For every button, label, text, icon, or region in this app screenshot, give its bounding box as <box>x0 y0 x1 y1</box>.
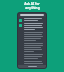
button[interactable]: Ask AI for <box>0 2 64 10</box>
other: Assistant avatar <box>19 24 22 27</box>
button[interactable]: Assistant avatar <box>18 13 46 68</box>
button[interactable] <box>19 43 44 52</box>
staticText: anything <box>25 6 40 10</box>
other: Home <box>28 66 37 67</box>
button[interactable] <box>19 61 44 65</box>
other: Assistant avatar <box>19 19 22 22</box>
button[interactable]: Assistant avatar <box>19 18 44 21</box>
button[interactable]: Assistant avatar <box>19 23 44 30</box>
button[interactable] <box>19 54 44 59</box>
button[interactable] <box>19 32 44 41</box>
staticText: Ask AI for <box>24 2 40 6</box>
